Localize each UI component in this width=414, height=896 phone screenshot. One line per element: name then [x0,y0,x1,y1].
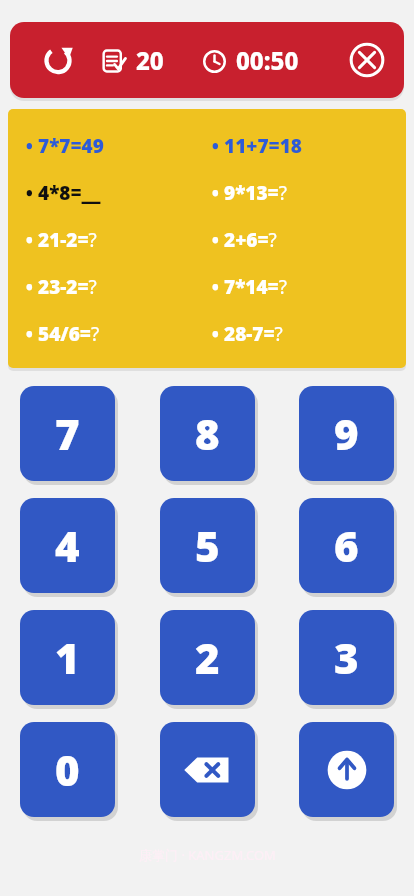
staticText: • [26,229,33,252]
staticText: 20 [136,44,164,77]
button[interactable]: Close [346,39,388,81]
button[interactable]: Submit [299,722,394,817]
button[interactable]: 3 [299,610,394,705]
staticText: 21-2=? [38,227,97,253]
staticText: 00:50 [236,44,299,77]
staticText: 1 [55,629,80,686]
button[interactable]: 20 [98,44,164,77]
staticText: 8 [195,405,220,462]
staticText: • [212,229,219,252]
staticText: • [212,276,219,299]
button[interactable]: Backspace [160,722,255,817]
staticText: 54/6=? [38,321,100,347]
staticText: • [26,276,33,299]
staticText: 0 [55,741,80,798]
staticText: 9*13=? [224,180,287,206]
staticText: 7 [55,405,80,462]
staticText: • [26,182,33,205]
button[interactable]: 8 [160,386,255,481]
button[interactable]: 2 [160,610,255,705]
staticText: • [26,135,33,158]
staticText: • [212,135,219,158]
staticText: • [212,323,219,346]
staticText: 23-2=? [38,274,97,300]
staticText: • [212,182,219,205]
staticText: 5 [195,517,220,574]
staticText: • [26,323,33,346]
staticText: 3 [334,629,359,686]
staticText: 7*14=? [224,274,287,300]
staticText: 9 [334,405,359,462]
button[interactable]: 7 [20,386,115,481]
staticText: 7*7=49 [38,133,104,159]
button[interactable]: 9 [299,386,394,481]
button[interactable]: 0 [20,722,115,817]
staticText: 康掌门 · KANGZM.COM [139,846,276,864]
button[interactable]: 6 [299,498,394,593]
staticText: 4*8=__ [38,180,101,206]
button[interactable]: 1 [20,610,115,705]
staticText: 6 [334,517,359,574]
staticText: 2 [195,629,220,686]
staticText: 11+7=18 [224,133,302,159]
button[interactable]: Restart [38,40,78,80]
button[interactable]: 4 [20,498,115,593]
staticText: 28-7=? [224,321,283,347]
button[interactable]: 00:50 [200,44,299,77]
staticText: 4 [55,517,80,574]
staticText: 2+6=? [224,227,277,253]
button[interactable]: 5 [160,498,255,593]
